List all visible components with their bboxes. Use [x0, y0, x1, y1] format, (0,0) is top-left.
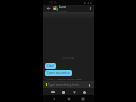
staticText: online	[59, 9, 66, 12]
staticText: Type something here..	[48, 83, 81, 87]
button[interactable]: Stickers	[60, 89, 66, 95]
button[interactable]: Attach	[71, 89, 77, 95]
staticText: 10:15	[49, 1, 57, 5]
staticText: Luca	[59, 5, 66, 9]
staticText: Come stai amico	[47, 71, 70, 75]
button[interactable]: Voice input	[86, 82, 92, 88]
button[interactable]: More	[81, 89, 87, 95]
button[interactable]: Home	[66, 96, 72, 102]
button[interactable]: Recent apps	[80, 96, 86, 102]
button[interactable]: Back	[43, 5, 53, 12]
button[interactable]: More options	[87, 5, 94, 12]
staticText: 12:45 — Seen by Marco today	[47, 77, 82, 80]
button[interactable]: Camera	[50, 89, 56, 95]
button[interactable]: Back	[51, 96, 57, 102]
staticText: yesterday	[43, 56, 94, 60]
staticText: Ciao!	[47, 64, 54, 68]
